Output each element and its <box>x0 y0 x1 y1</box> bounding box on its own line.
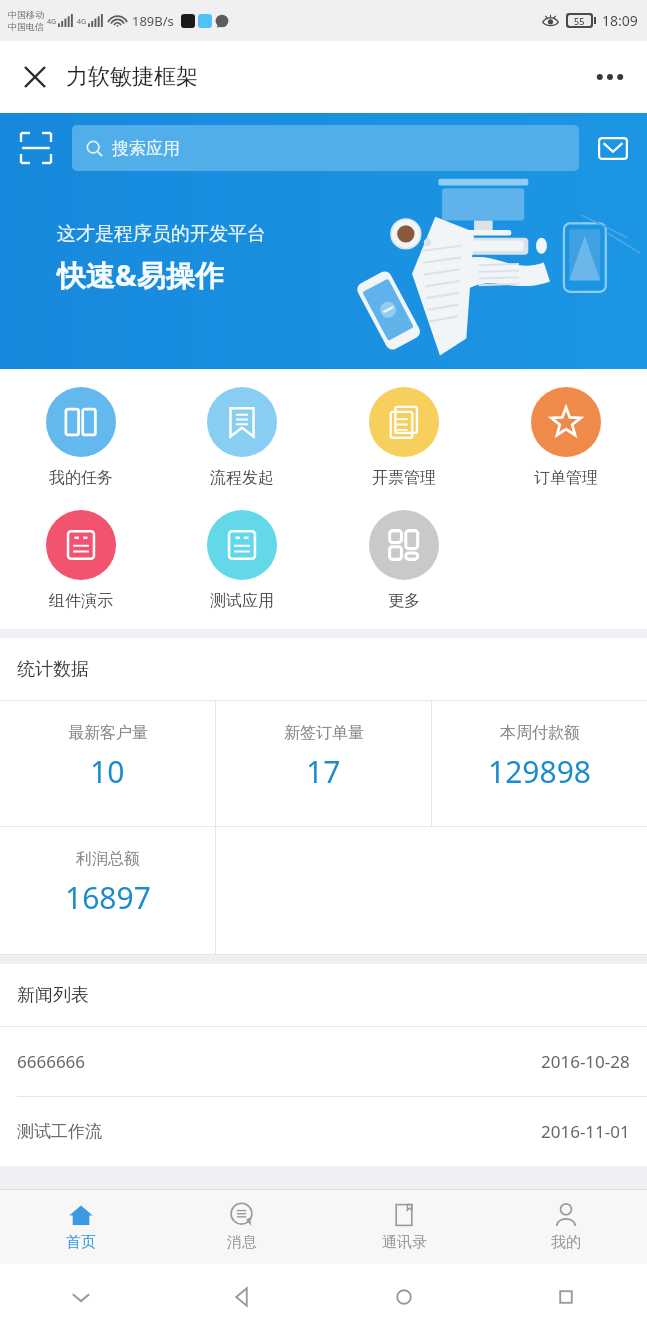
staticText: 18:09 <box>602 11 638 30</box>
button[interactable]: Recents <box>485 1264 647 1330</box>
staticText: 更多 <box>388 591 420 611</box>
staticText: 测试应用 <box>210 591 274 611</box>
staticText: 搜索应用 <box>112 138 180 159</box>
staticText: 2016-11-01 <box>541 1120 630 1143</box>
staticText: 中国电信 <box>8 21 44 32</box>
staticText: 10 <box>90 751 125 792</box>
staticText: 6666666 <box>17 1050 86 1073</box>
staticText: 中国移动 <box>8 9 44 20</box>
button[interactable]: Scan <box>14 126 58 170</box>
staticText: 组件演示 <box>49 591 113 611</box>
staticText: 新签订单量 <box>284 723 364 743</box>
staticText: 我的 <box>551 1233 581 1252</box>
button[interactable]: 测试工作流 <box>0 1097 647 1166</box>
staticText: 55 <box>574 15 585 26</box>
staticText: 订单管理 <box>534 468 598 488</box>
staticText: 2016-10-28 <box>541 1050 630 1073</box>
staticText: 189B/s <box>132 12 174 30</box>
staticText: 新闻列表 <box>17 984 89 1007</box>
button[interactable]: 消息 <box>161 1190 323 1264</box>
button[interactable]: 最新客户量 <box>0 701 215 826</box>
staticText: 测试工作流 <box>17 1121 102 1142</box>
button[interactable]: 通讯录 <box>323 1190 485 1264</box>
staticText: 力软敏捷框架 <box>66 63 198 91</box>
staticText: 快速&易操作 <box>57 255 224 295</box>
button[interactable]: 本周付款额 <box>432 701 647 826</box>
button[interactable]: 流程发起 <box>161 383 323 492</box>
button[interactable]: 订单管理 <box>485 383 647 492</box>
staticText: 利润总额 <box>76 849 140 869</box>
button[interactable]: Home <box>323 1264 485 1330</box>
staticText: 这才是程序员的开发平台 <box>57 222 266 246</box>
button[interactable]: More options <box>587 54 633 100</box>
staticText: 开票管理 <box>372 468 436 488</box>
staticText: 129898 <box>488 751 591 792</box>
staticText: 16897 <box>65 877 151 918</box>
button[interactable]: 开票管理 <box>323 383 485 492</box>
button[interactable]: 首页 <box>0 1190 161 1264</box>
button[interactable]: 测试应用 <box>161 506 323 615</box>
button[interactable]: 6666666 <box>0 1027 647 1096</box>
button[interactable]: 我的任务 <box>0 383 161 492</box>
staticText: 流程发起 <box>210 468 274 488</box>
button[interactable]: Close <box>18 60 52 94</box>
staticText: 消息 <box>227 1233 257 1252</box>
staticText: 本周付款额 <box>500 723 580 743</box>
staticText: 4G <box>77 17 87 27</box>
button[interactable]: 我的 <box>485 1190 647 1264</box>
staticText: 最新客户量 <box>68 723 148 743</box>
button[interactable]: 更多 <box>323 506 485 615</box>
button[interactable]: Collapse <box>0 1264 161 1330</box>
staticText: 4G <box>47 17 57 27</box>
button[interactable]: 利润总额 <box>0 827 215 954</box>
button[interactable]: 组件演示 <box>0 506 161 615</box>
button[interactable]: 搜索应用 <box>72 125 579 171</box>
staticText: 通讯录 <box>382 1233 427 1252</box>
button[interactable]: 新签订单量 <box>216 701 431 826</box>
staticText: 17 <box>306 751 341 792</box>
button[interactable]: Messages <box>593 128 633 168</box>
staticText: 首页 <box>66 1233 96 1252</box>
button[interactable]: Back <box>161 1264 323 1330</box>
staticText: 我的任务 <box>49 468 113 488</box>
staticText: 统计数据 <box>17 658 89 681</box>
